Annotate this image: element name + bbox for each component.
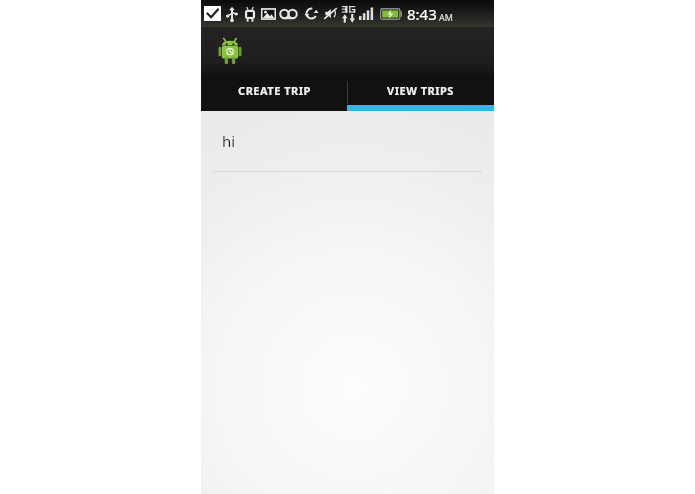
staticText: VIEW TRIPS bbox=[387, 83, 454, 98]
button[interactable]: VIEW TRIPS bbox=[347, 74, 494, 111]
button[interactable]: hi bbox=[201, 111, 494, 172]
staticText: 8:43 bbox=[407, 4, 437, 24]
staticText: AM bbox=[439, 11, 453, 23]
button[interactable]: App icon, navigate up bbox=[213, 34, 247, 68]
button[interactable]: CREATE TRIP bbox=[201, 74, 347, 111]
staticText: hi bbox=[222, 131, 236, 151]
staticText: CREATE TRIP bbox=[238, 83, 311, 98]
